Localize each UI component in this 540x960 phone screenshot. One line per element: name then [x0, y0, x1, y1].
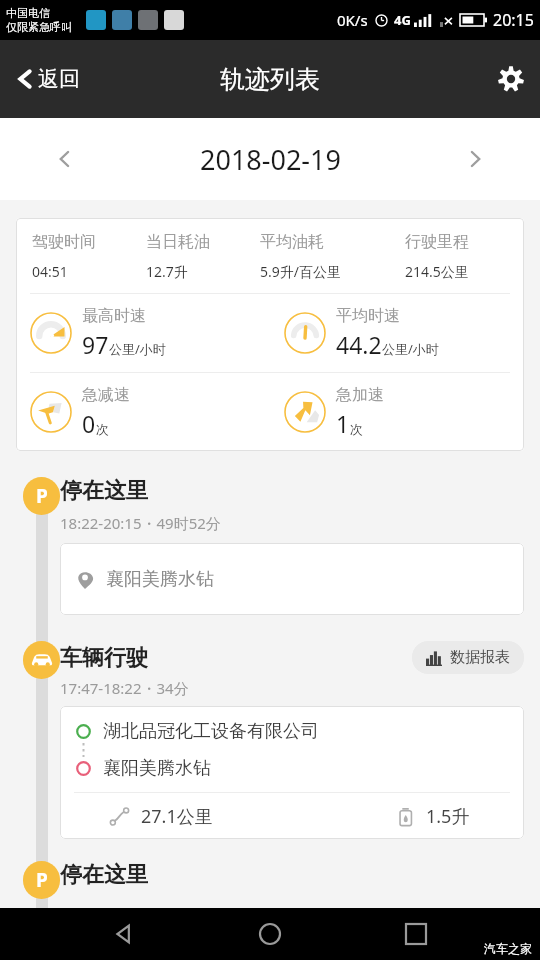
staticText: 停在这里: [60, 861, 148, 889]
staticText: 平均油耗: [260, 232, 324, 252]
staticText: 平均时速: [336, 306, 400, 326]
staticText: 44.2: [336, 329, 382, 360]
staticText: 中国电信: [6, 6, 50, 20]
staticText: 5.9升/百公里: [260, 262, 341, 281]
staticText: 次: [96, 421, 109, 437]
button[interactable]: Back: [102, 912, 146, 956]
button[interactable]: P: [0, 861, 540, 899]
button[interactable]: 返回: [0, 56, 96, 102]
button[interactable]: Home: [248, 912, 292, 956]
staticText: 车辆行驶: [60, 644, 148, 672]
button[interactable]: 车辆行驶: [0, 641, 540, 839]
staticText: 27.1公里: [141, 804, 213, 829]
staticText: 汽车之家: [484, 941, 532, 956]
staticText: 湖北品冠化工设备有限公司: [103, 720, 319, 743]
button[interactable]: Next day: [454, 138, 496, 180]
staticText: 12.7升: [146, 262, 188, 281]
staticText: 返回: [38, 66, 80, 92]
staticText: 18:22-20:15・49时52分: [60, 513, 221, 533]
staticText: P: [36, 867, 48, 893]
staticText: 最高时速: [82, 306, 146, 326]
staticText: P: [36, 483, 48, 509]
button[interactable]: 驾驶时间: [16, 218, 524, 451]
staticText: 0K/s: [337, 10, 368, 30]
staticText: 公里/小时: [382, 340, 439, 358]
staticText: 仅限紧急呼叫: [6, 20, 72, 34]
button[interactable]: Recents: [394, 912, 438, 956]
staticText: 1: [336, 408, 350, 439]
staticText: 驾驶时间: [32, 232, 96, 252]
staticText: 214.5公里: [405, 262, 469, 281]
button[interactable]: Previous day: [44, 138, 86, 180]
button[interactable]: P: [0, 477, 540, 615]
staticText: 次: [350, 421, 363, 437]
staticText: 1.5升: [426, 804, 470, 829]
staticText: 20:15: [493, 9, 534, 31]
button[interactable]: Settings: [482, 52, 540, 106]
staticText: 公里/小时: [109, 340, 166, 358]
staticText: 当日耗油: [146, 232, 210, 252]
staticText: 襄阳美腾水钻: [106, 568, 214, 591]
staticText: 2018-02-19: [200, 141, 341, 178]
staticText: 襄阳美腾水钻: [103, 757, 211, 780]
staticText: 0: [82, 408, 96, 439]
staticText: 数据报表: [450, 648, 510, 667]
button[interactable]: 数据报表: [412, 641, 524, 674]
staticText: 97: [82, 329, 109, 360]
staticText: 停在这里: [60, 477, 148, 505]
staticText: 04:51: [32, 262, 68, 281]
staticText: 4G: [394, 11, 411, 29]
staticText: 轨迹列表: [220, 64, 320, 95]
staticText: 17:47-18:22・34分: [60, 678, 189, 698]
staticText: 行驶里程: [405, 232, 469, 252]
staticText: 急加速: [336, 385, 384, 405]
staticText: 急减速: [82, 385, 130, 405]
